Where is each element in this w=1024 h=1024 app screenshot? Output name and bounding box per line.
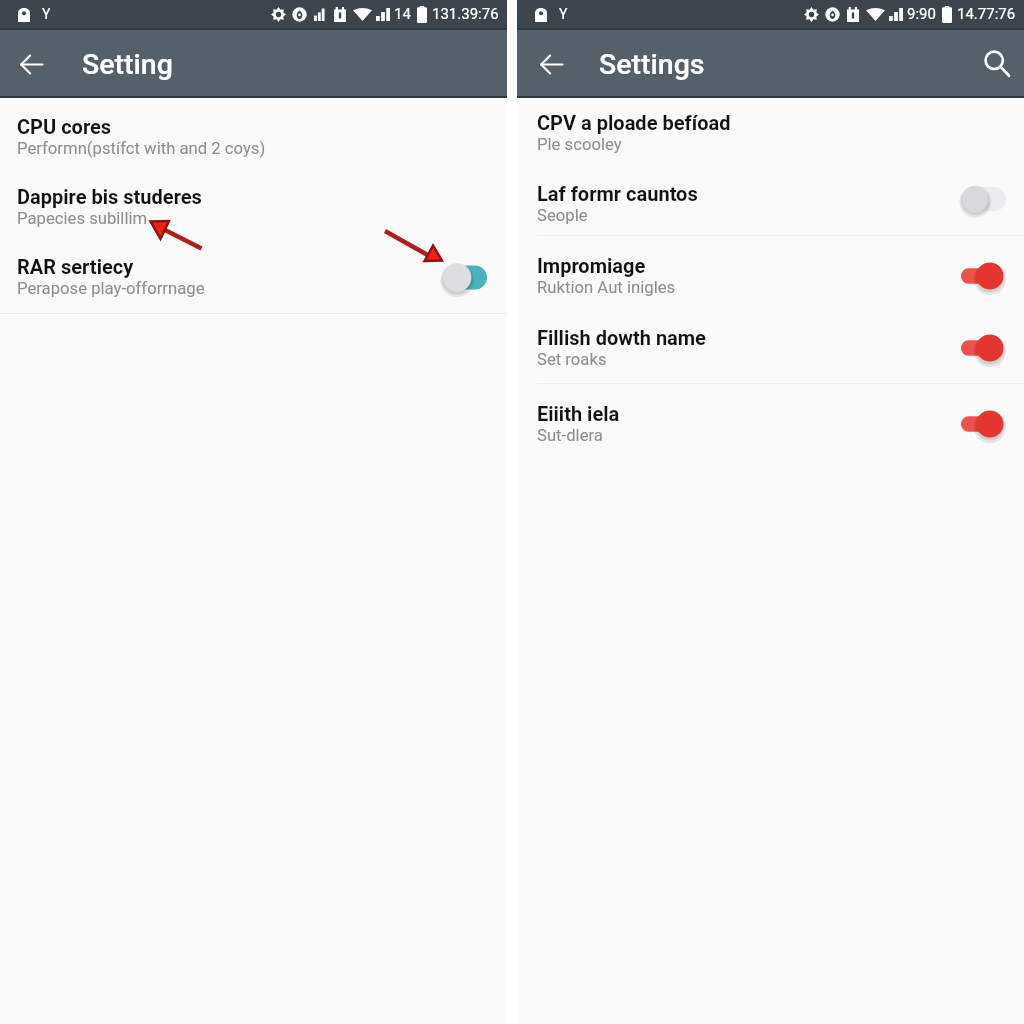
button[interactable]: Back — [529, 42, 573, 86]
staticText: 131.39:76 — [432, 5, 499, 23]
button[interactable]: CPU cores — [0, 102, 507, 172]
staticText: Ruktion Aut inigles — [537, 278, 676, 298]
staticText: 14 — [394, 5, 411, 23]
button[interactable]: Back — [9, 42, 53, 86]
button[interactable]: Fillish dowth name — [517, 312, 1024, 383]
staticText: Y — [42, 6, 51, 22]
button[interactable]: Toggle — [952, 240, 1024, 311]
staticText: Perapose play-offorrnage — [17, 279, 205, 299]
button[interactable]: RAR sertiecy — [0, 242, 507, 312]
staticText: Ple scooley — [537, 135, 622, 155]
staticText: Settings — [599, 48, 705, 81]
button[interactable]: Impromiage — [517, 240, 1024, 311]
staticText: Papecies subillim — [17, 209, 148, 229]
button[interactable]: Dappire bis studeres — [0, 172, 507, 242]
staticText: 14.77:76 — [957, 5, 1016, 23]
staticText: Y — [559, 6, 568, 22]
staticText: Fillish dowth name — [537, 326, 706, 349]
button[interactable]: Toggle — [952, 312, 1024, 383]
staticText: CPU cores — [17, 115, 112, 138]
staticText: Performn(pstífct with and 2 coys) — [17, 139, 266, 159]
staticText: Eiiith iela — [537, 402, 620, 425]
staticText: Sut-dlera — [537, 426, 603, 446]
staticText: 9:90 — [907, 5, 936, 23]
staticText: Impromiage — [537, 254, 646, 277]
staticText: CPV a ploade befíoad — [537, 111, 731, 134]
staticText: Laf formr cauntos — [537, 182, 698, 205]
staticText: RAR sertiecy — [17, 255, 134, 278]
button[interactable]: Eiiith iela — [517, 388, 1024, 459]
staticText: Seople — [537, 206, 588, 226]
button[interactable]: Search — [974, 41, 1020, 87]
button[interactable]: Laf formr cauntos — [517, 168, 1024, 239]
button[interactable]: CPV a ploade befíoad — [517, 97, 1024, 168]
button[interactable]: Toggle — [952, 168, 1024, 239]
button[interactable]: Toggle — [952, 388, 1024, 459]
staticText: Dappire bis studeres — [17, 185, 202, 208]
staticText: Set roaks — [537, 350, 607, 370]
button[interactable]: Toggle — [435, 242, 507, 312]
staticText: Setting — [82, 48, 173, 81]
